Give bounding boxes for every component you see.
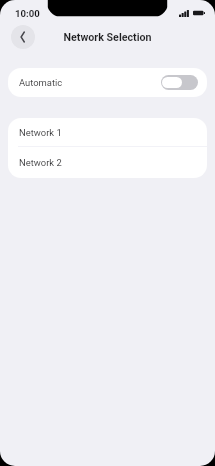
button[interactable]: Network 1 — [8, 118, 207, 146]
button[interactable]: Automatic toggle — [161, 75, 198, 90]
button[interactable]: Automatic — [8, 68, 207, 97]
staticText: Automatic — [19, 77, 63, 88]
staticText: Network Selection — [63, 31, 152, 44]
staticText: Network 1 — [19, 127, 62, 138]
button[interactable]: Network 2 — [8, 147, 207, 178]
button[interactable]: Back — [11, 25, 35, 49]
staticText: Network 2 — [19, 157, 62, 168]
staticText: 10:00 — [15, 8, 40, 19]
